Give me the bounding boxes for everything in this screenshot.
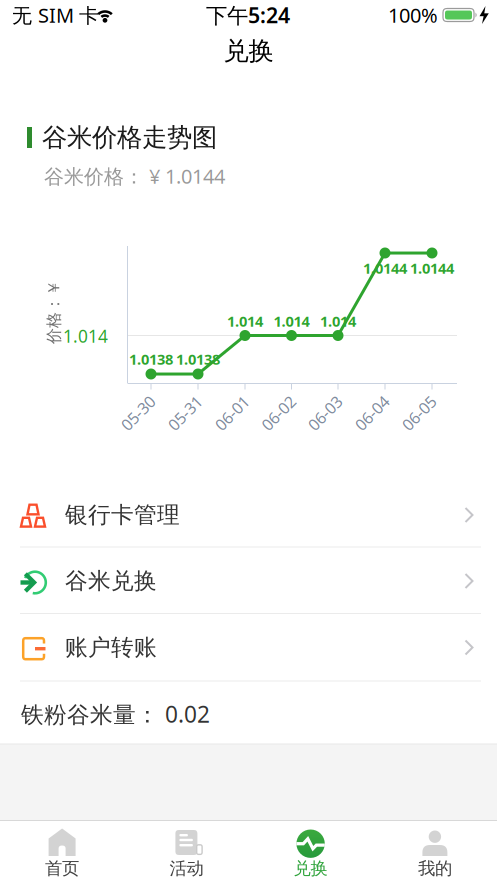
staticText: 银行卡管理 bbox=[65, 501, 180, 529]
staticText: 1.014 bbox=[63, 324, 108, 347]
staticText: 下午5:24 bbox=[206, 1, 290, 29]
button[interactable]: 我的 bbox=[373, 821, 497, 883]
staticText: 铁粉谷米量： 0.02 bbox=[21, 699, 210, 729]
staticText: 06-03 bbox=[304, 402, 345, 424]
button[interactable]: 首页 bbox=[0, 821, 124, 883]
staticText: 谷米兑换 bbox=[65, 567, 157, 595]
staticText: 账户转账 bbox=[65, 634, 157, 661]
staticText: 1.014 bbox=[273, 311, 309, 331]
staticText: 1.014 bbox=[320, 311, 356, 331]
staticText: 1.0138 bbox=[176, 349, 220, 369]
staticText: 05-30 bbox=[117, 402, 158, 424]
staticText: 首页 bbox=[45, 858, 79, 879]
staticText: 100% bbox=[388, 2, 438, 28]
staticText: 06-04 bbox=[351, 402, 392, 424]
staticText: 谷米价格： ¥ 1.0144 bbox=[44, 163, 225, 189]
staticText: 06-02 bbox=[258, 402, 299, 424]
staticText: 无 SIM 卡 bbox=[12, 2, 99, 28]
staticText: 1.014 bbox=[227, 311, 263, 331]
staticText: 1.0144 bbox=[363, 258, 407, 278]
button[interactable]: 活动 bbox=[124, 821, 248, 883]
button[interactable]: 银行卡管理 bbox=[0, 481, 497, 547]
staticText: 1.0144 bbox=[410, 258, 454, 278]
staticText: 我的 bbox=[418, 858, 452, 879]
staticText: 兑换 bbox=[294, 858, 328, 879]
staticText: 06-01 bbox=[211, 402, 252, 424]
staticText: 1.0138 bbox=[129, 349, 173, 369]
staticText: 兑换 bbox=[223, 35, 273, 66]
button[interactable]: 谷米兑换 bbox=[0, 547, 497, 613]
button[interactable]: 账户转账 bbox=[0, 614, 497, 680]
button[interactable]: 兑换 bbox=[249, 821, 373, 883]
staticText: 活动 bbox=[169, 858, 203, 879]
staticText: 价格：￥ bbox=[22, 302, 86, 322]
staticText: 谷米价格走势图 bbox=[42, 122, 217, 153]
staticText: 06-05 bbox=[398, 402, 439, 424]
staticText: 05-31 bbox=[164, 402, 205, 424]
